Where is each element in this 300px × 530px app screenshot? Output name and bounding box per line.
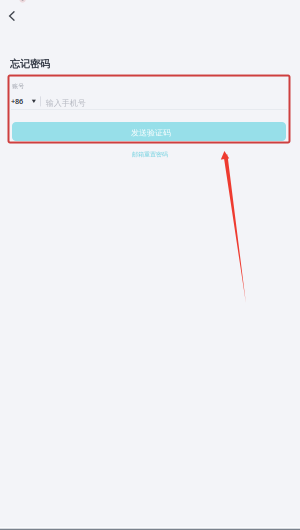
staticText: +86 <box>11 96 23 106</box>
button[interactable]: 邮箱重置密码 <box>0 149 300 160</box>
button[interactable]: Country code <box>11 95 41 107</box>
staticText: 发送验证码 <box>131 128 171 138</box>
staticText: 邮箱重置密码 <box>132 151 168 158</box>
staticText: 输入手机号 <box>46 98 86 108</box>
staticText: 忘记密码 <box>10 57 50 70</box>
button[interactable]: 发送验证码 <box>12 122 286 141</box>
staticText: 账号 <box>12 82 24 90</box>
button[interactable]: Back <box>4 5 30 29</box>
